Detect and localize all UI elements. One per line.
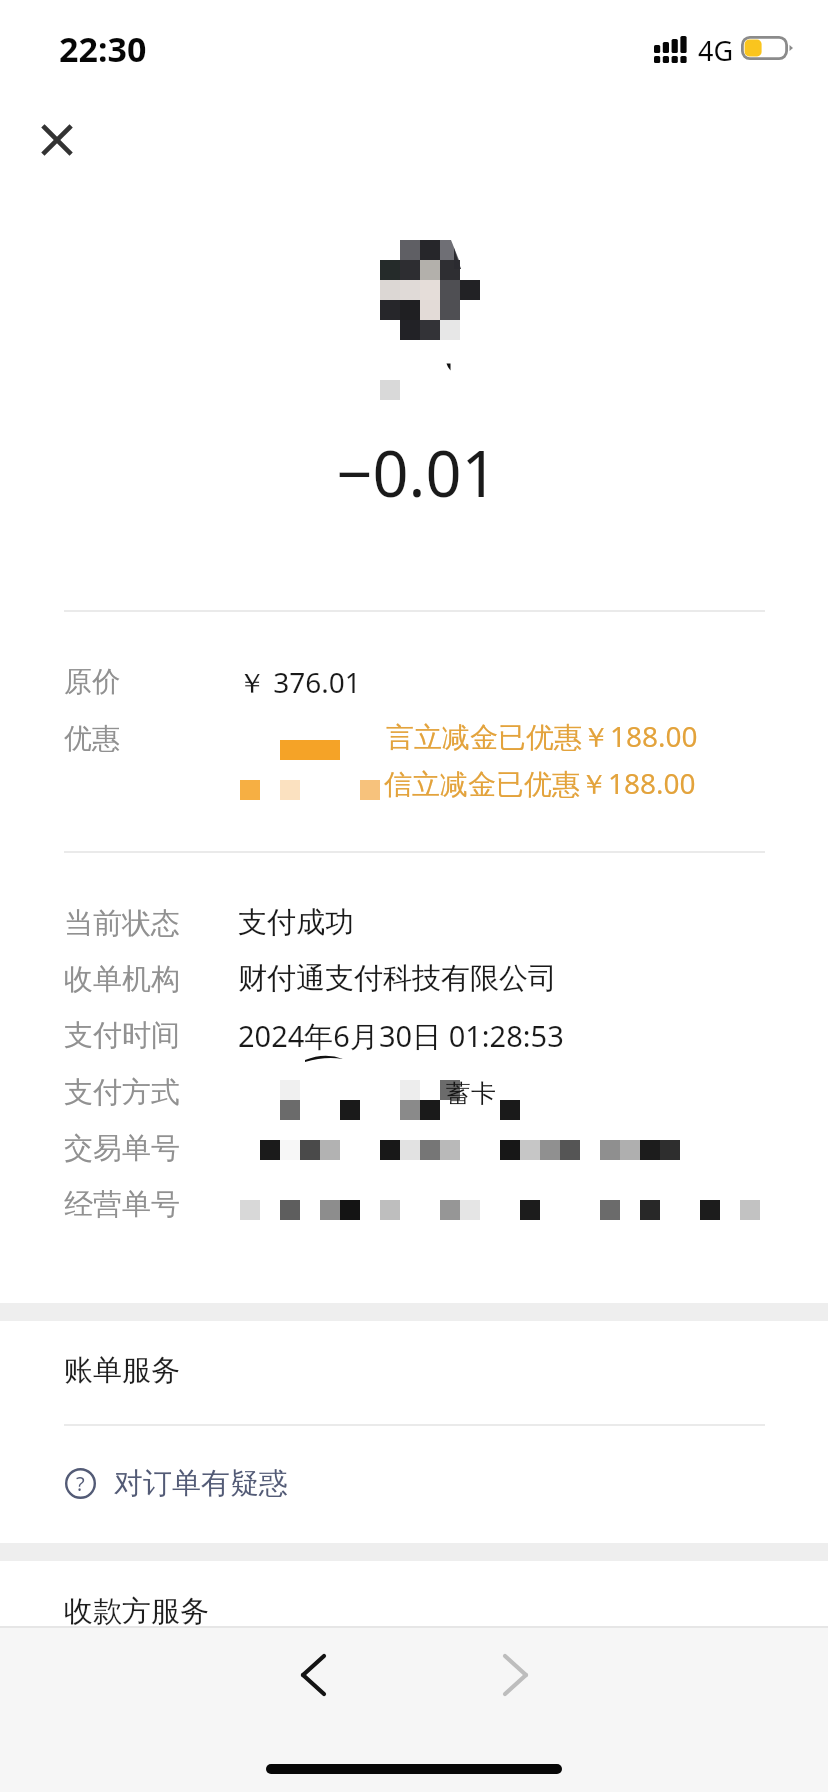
staticText: 原价 — [64, 664, 120, 699]
staticText: 当前状态 — [64, 905, 180, 942]
staticText: ￥ 376.01 — [238, 663, 361, 701]
staticText: −0.01 — [3, 430, 828, 516]
staticText: 信立减金已优惠￥188.00 — [384, 764, 696, 802]
staticText: 2024年6月30日 01:28:53 — [238, 1016, 564, 1056]
staticText: 支付时间 — [64, 1017, 180, 1054]
staticText: 收单机构 — [64, 961, 180, 998]
staticText: 经营单号 — [64, 1186, 180, 1223]
button[interactable]: Forward — [480, 1640, 550, 1710]
staticText: 财付通支付科技有限公司 — [238, 960, 557, 997]
staticText: 优惠 — [64, 721, 120, 756]
button[interactable]: ? — [0, 1459, 828, 1508]
staticText: 支付方式 — [64, 1074, 180, 1111]
staticText: 交易单号 — [64, 1130, 180, 1167]
staticText: 支付成功 — [238, 904, 354, 941]
staticText: ? — [76, 1470, 85, 1497]
button[interactable]: Close — [22, 105, 92, 175]
staticText: 言立减金已优惠￥188.00 — [386, 717, 698, 755]
button[interactable]: Back — [278, 1640, 348, 1710]
staticText: 对订单有疑惑 — [114, 1465, 288, 1502]
staticText: 账单服务 — [64, 1352, 180, 1389]
staticText: 蓄卡 — [446, 1078, 496, 1109]
staticText: 收款方服务 — [64, 1593, 209, 1630]
staticText: 22:30 — [59, 26, 147, 72]
staticText: 4G — [698, 32, 734, 69]
